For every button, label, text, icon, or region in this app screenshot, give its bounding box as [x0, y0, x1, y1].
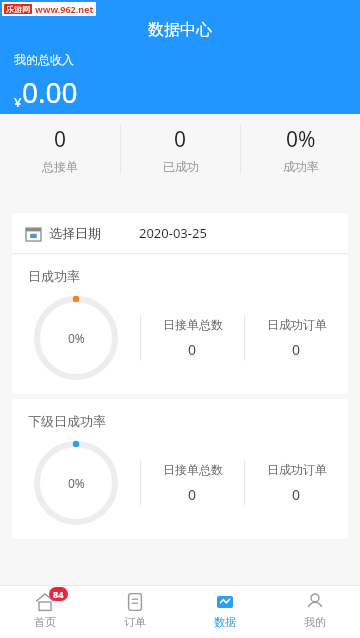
staticText: 日接单总数	[163, 462, 223, 477]
staticText: 0%	[68, 475, 85, 491]
staticText: 0%	[68, 330, 85, 346]
staticText: 订单	[124, 615, 146, 629]
staticText: 日成功订单	[267, 317, 327, 332]
staticText: 首页	[34, 615, 56, 629]
button[interactable]: 我的	[270, 586, 360, 638]
button[interactable]: 日成功订单	[245, 317, 348, 359]
button[interactable]: 0%	[241, 125, 360, 174]
staticText: 乐游网	[6, 4, 30, 14]
button[interactable]: 日接单总数	[141, 317, 244, 359]
staticText: 下级日成功率	[28, 413, 106, 429]
staticText: 84	[53, 588, 64, 600]
button[interactable]: 订单	[90, 586, 180, 638]
button[interactable]: 0	[121, 125, 240, 174]
staticText: 我的总收入	[14, 52, 74, 67]
button[interactable]: 选择日期	[12, 213, 348, 253]
button[interactable]: 0	[0, 125, 120, 174]
staticText: 日成功率	[28, 268, 80, 284]
staticText: 0	[188, 340, 197, 359]
staticText: ¥	[14, 93, 22, 111]
staticText: 日成功订单	[267, 462, 327, 477]
staticText: 0.00	[22, 73, 78, 111]
button[interactable]: 数据	[180, 586, 270, 638]
staticText: 日接单总数	[163, 317, 223, 332]
staticText: 0%	[286, 125, 316, 154]
button[interactable]: 日接单总数	[141, 462, 244, 504]
staticText: www.962.net	[35, 3, 94, 15]
staticText: 0	[174, 125, 187, 154]
staticText: 0	[54, 125, 67, 154]
staticText: 0	[292, 485, 301, 504]
staticText: 成功率	[283, 159, 319, 174]
button[interactable]: 首页	[0, 586, 90, 638]
staticText: 2020-03-25	[139, 224, 207, 242]
button[interactable]: 日成功订单	[245, 462, 348, 504]
staticText: 数据中心	[0, 20, 360, 40]
staticText: 数据	[214, 615, 236, 629]
staticText: 0	[292, 340, 301, 359]
staticText: 我的	[304, 615, 326, 629]
staticText: 选择日期	[49, 225, 101, 241]
staticText: 0	[188, 485, 197, 504]
staticText: 已成功	[163, 159, 199, 174]
staticText: 总接单	[42, 159, 78, 174]
